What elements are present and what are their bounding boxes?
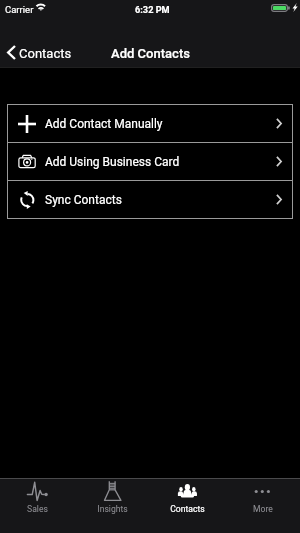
staticText: Add Contact Manually [45,117,163,131]
staticText: Add Using Business Card [45,155,180,169]
staticText: Contacts [19,46,72,61]
button[interactable]: More [225,479,300,533]
button[interactable]: Sales [0,479,75,533]
staticText: Contacts [170,504,205,514]
staticText: Insights [97,504,128,514]
other: Back [6,45,16,60]
button[interactable]: Sync Contacts [7,181,293,218]
button[interactable]: Insights [75,479,150,533]
staticText: More [253,504,273,514]
button[interactable]: Add Using Business Card [7,143,293,180]
staticText: Add Contacts [111,46,190,61]
button[interactable]: Add Contact Manually [7,105,293,142]
button[interactable]: Contacts [150,479,225,533]
staticText: Carrier [5,4,34,15]
staticText: 6:32 PM [135,4,170,15]
button[interactable]: Back [0,33,82,71]
staticText: Sales [27,504,48,514]
staticText: Sync Contacts [45,193,122,207]
